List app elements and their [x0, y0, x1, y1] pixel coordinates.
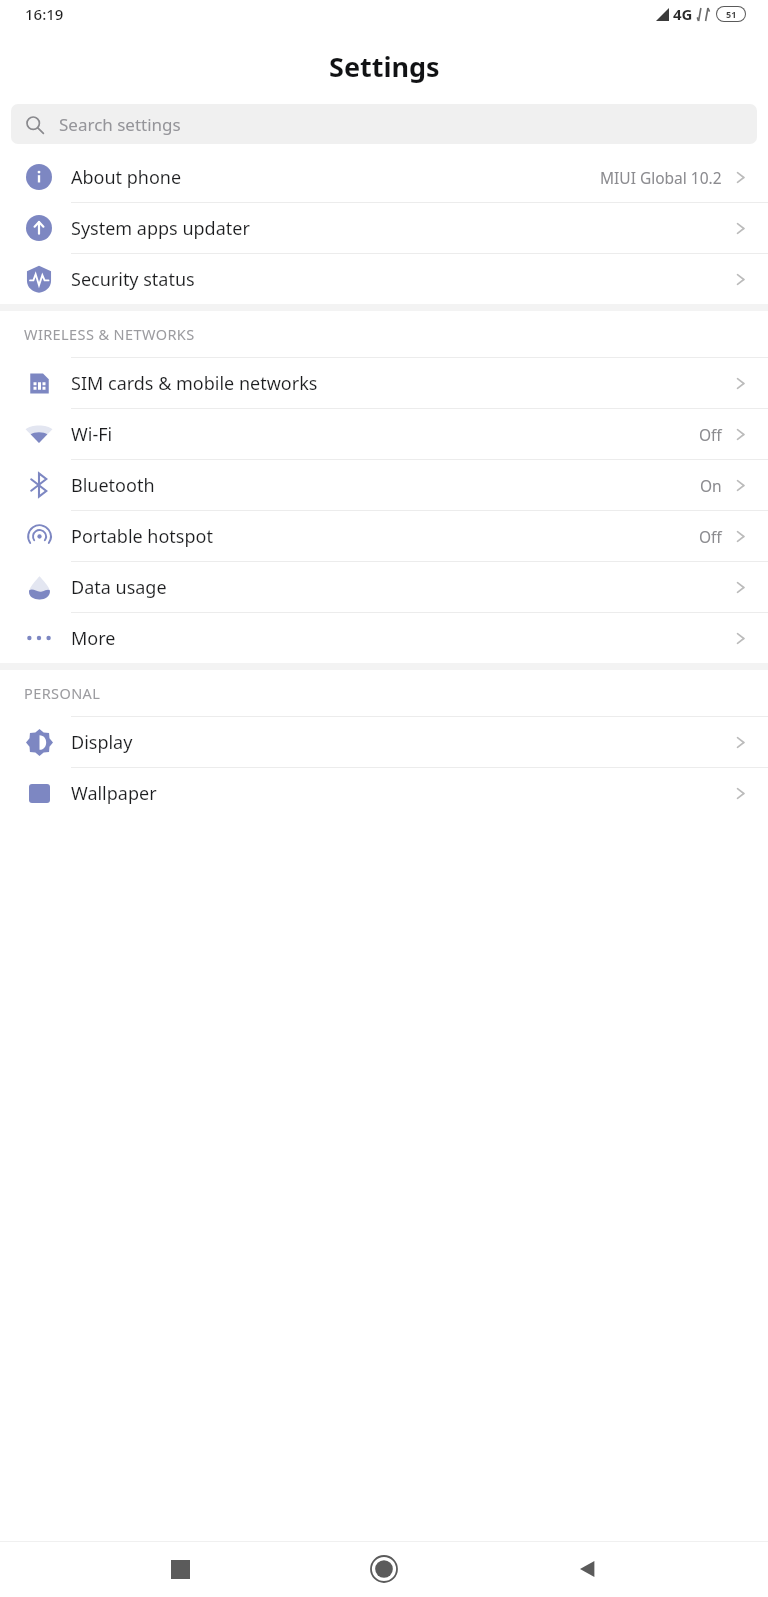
staticText: SIM cards & mobile networks: [71, 371, 318, 396]
staticText: 4G: [673, 4, 693, 24]
button[interactable]: Home: [360, 1545, 408, 1593]
staticText: Wi-Fi: [71, 422, 113, 447]
staticText: Off: [699, 526, 722, 547]
staticText: Bluetooth: [71, 473, 155, 498]
button[interactable]: Display: [0, 717, 768, 768]
staticText: Off: [699, 424, 722, 445]
staticText: Data usage: [71, 575, 167, 600]
button[interactable]: Back: [564, 1545, 612, 1593]
button[interactable]: Search settings: [11, 104, 757, 144]
staticText: PERSONAL: [24, 683, 101, 703]
button[interactable]: SIM cards & mobile networks: [0, 358, 768, 409]
button[interactable]: Recent apps: [156, 1545, 204, 1593]
staticText: Portable hotspot: [71, 524, 213, 549]
button[interactable]: Portable hotspot: [0, 511, 768, 562]
staticText: System apps updater: [71, 216, 250, 241]
button[interactable]: Security status: [0, 254, 768, 304]
staticText: 51: [726, 8, 737, 20]
staticText: MIUI Global 10.2: [600, 167, 722, 188]
button[interactable]: Bluetooth: [0, 460, 768, 511]
button[interactable]: Wi-Fi: [0, 409, 768, 460]
button[interactable]: Data usage: [0, 562, 768, 613]
staticText: Settings: [329, 48, 440, 85]
staticText: 16:19: [25, 4, 64, 24]
staticText: Display: [71, 730, 133, 755]
button[interactable]: System apps updater: [0, 203, 768, 254]
staticText: More: [71, 626, 116, 651]
button[interactable]: Wallpaper: [0, 768, 768, 818]
staticText: WIRELESS & NETWORKS: [24, 324, 195, 344]
button[interactable]: More: [0, 613, 768, 663]
staticText: About phone: [71, 165, 182, 190]
staticText: Search settings: [59, 113, 181, 136]
staticText: Wallpaper: [71, 781, 157, 806]
button[interactable]: About phone: [0, 152, 768, 203]
staticText: Security status: [71, 267, 195, 292]
staticText: On: [700, 475, 722, 496]
